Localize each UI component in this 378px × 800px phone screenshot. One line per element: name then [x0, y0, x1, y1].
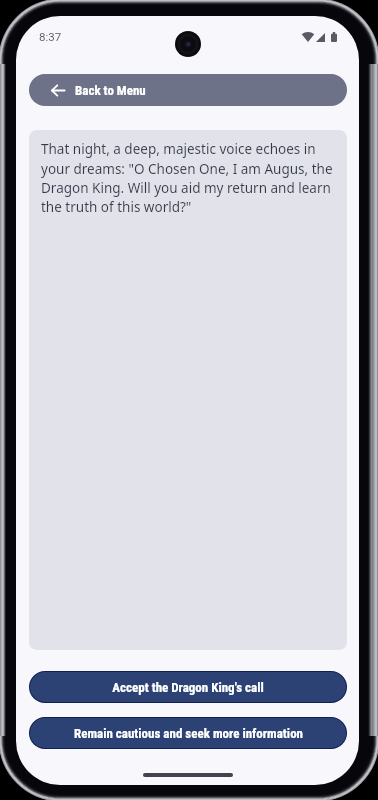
button[interactable]: Back — [29, 74, 347, 106]
staticText: Back to Menu — [75, 83, 146, 98]
button[interactable]: Accept the Dragon King's call — [30, 672, 346, 702]
staticText: Accept the Dragon King's call — [112, 680, 264, 695]
other: Back — [51, 84, 65, 97]
staticText: Remain cautious and seek more informatio… — [74, 726, 303, 741]
other: Wi-Fi — [302, 32, 314, 42]
staticText: That night, a deep, majestic voice echoe… — [41, 140, 335, 216]
other: Mobile signal — [316, 33, 325, 42]
button[interactable]: Remain cautious and seek more informatio… — [30, 718, 346, 748]
staticText: 8:37 — [39, 30, 62, 43]
other: Battery — [331, 32, 337, 42]
